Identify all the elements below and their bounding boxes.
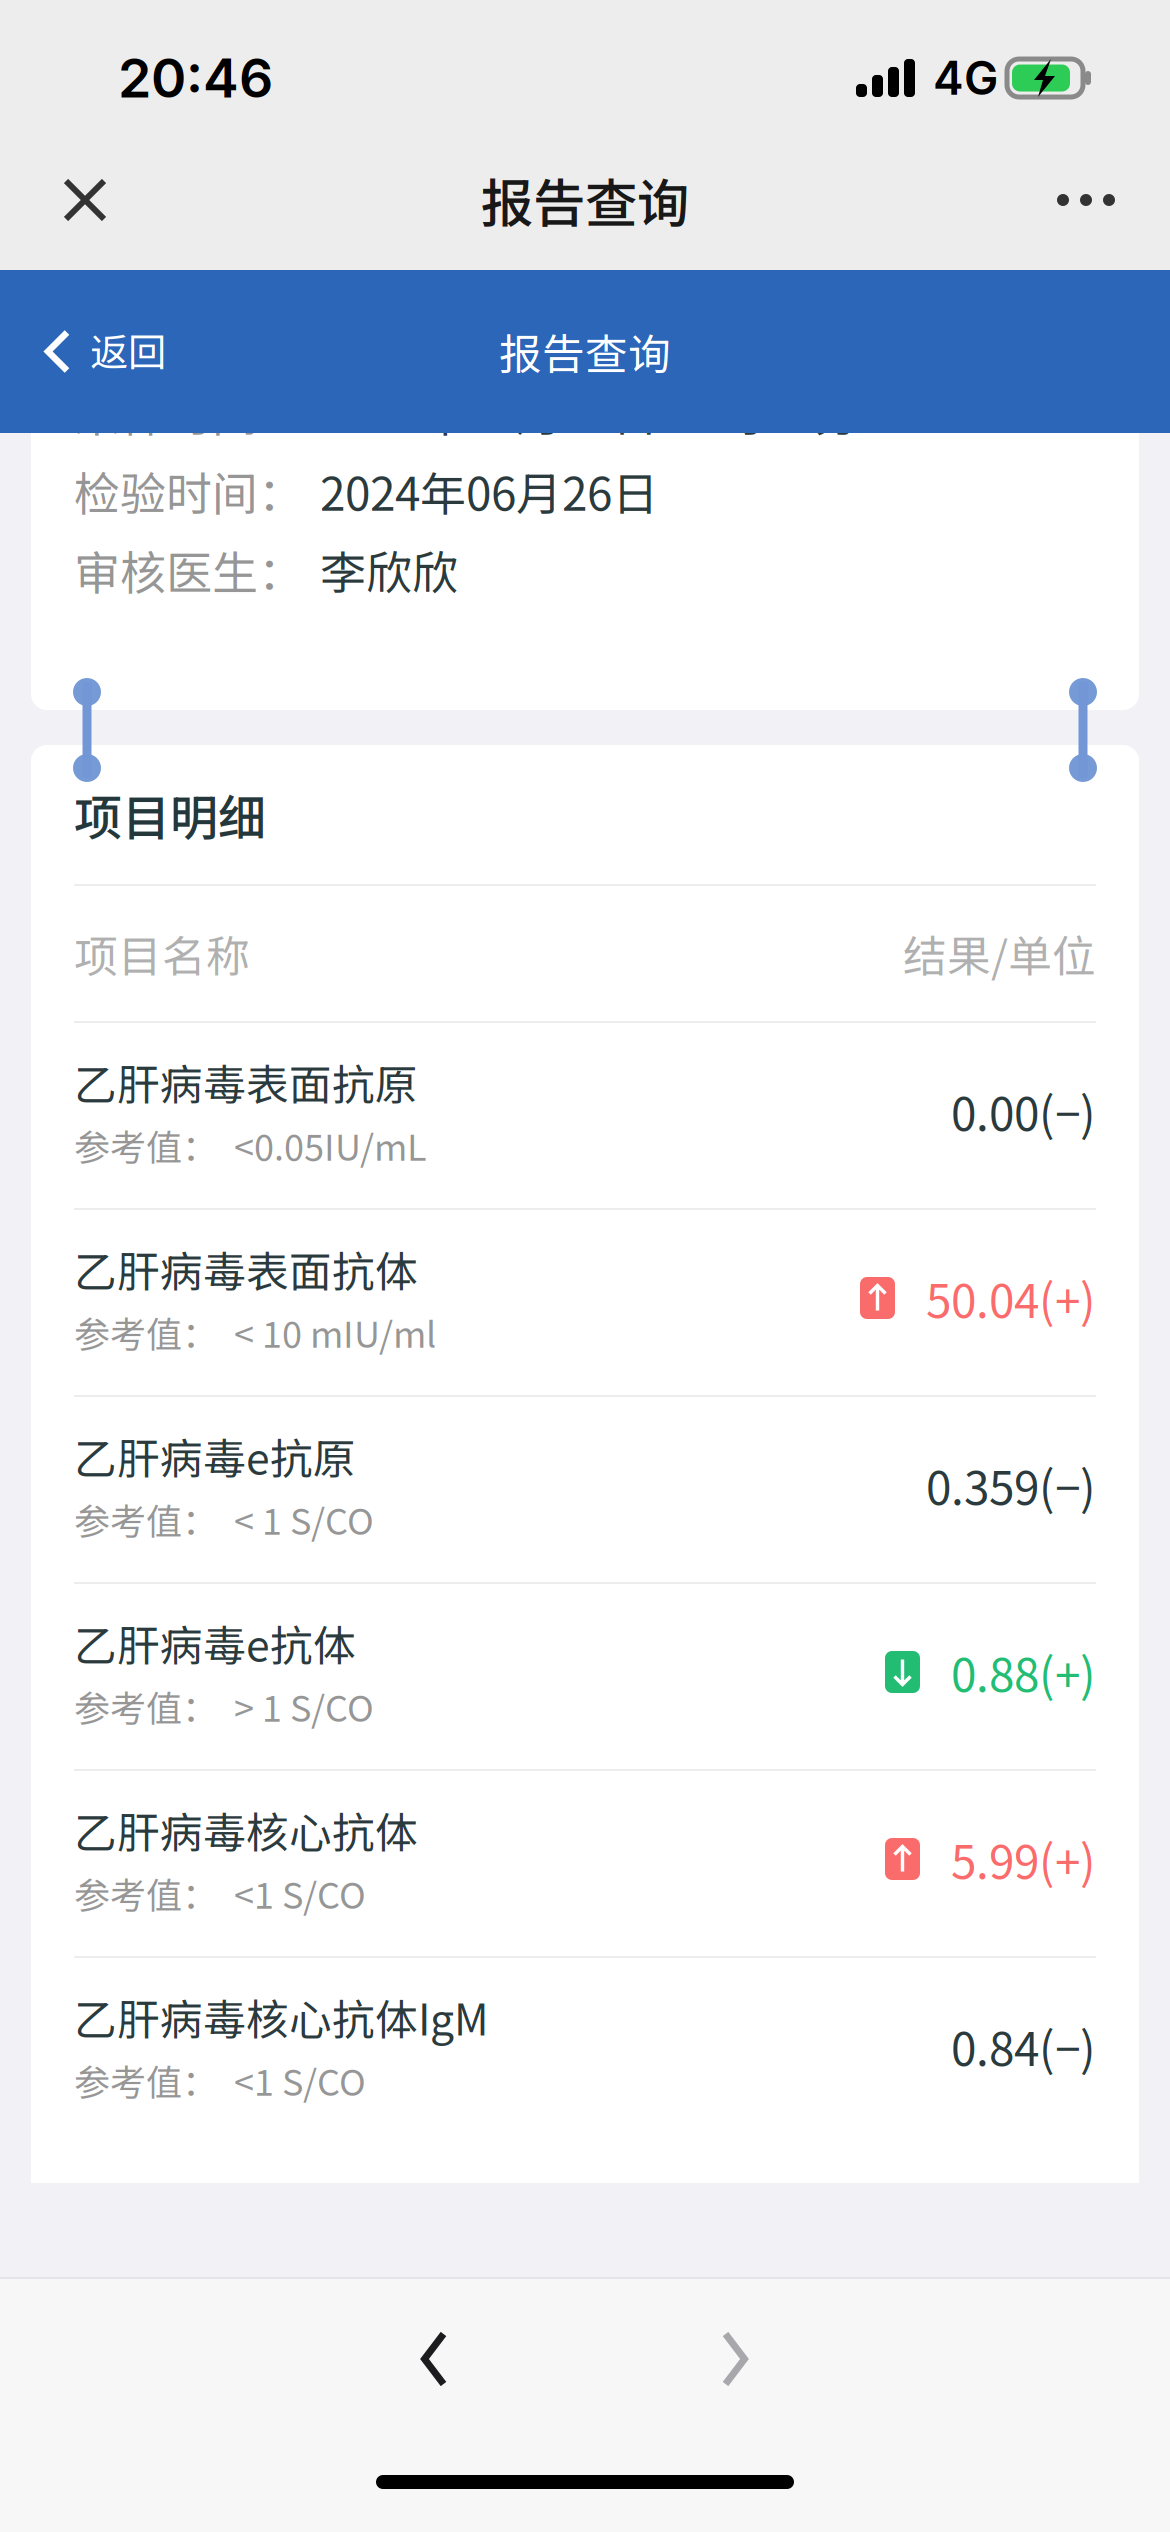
- staticText: 4G: [933, 50, 998, 106]
- staticText: < 10 mIU/ml: [234, 1306, 436, 1358]
- staticText: 乙肝病毒核心抗体: [74, 1799, 418, 1861]
- staticText: 项目明细: [74, 780, 266, 849]
- button[interactable]: Close: [30, 130, 140, 270]
- staticText: < 1 S/CO: [234, 1493, 374, 1545]
- staticText: 审核医生：: [74, 536, 304, 603]
- button[interactable]: More: [1031, 130, 1141, 270]
- staticText: <0.05IU/mL: [234, 1119, 427, 1171]
- staticText: 乙肝病毒表面抗原: [74, 1051, 418, 1113]
- staticText: 参考值：: [74, 1119, 218, 1171]
- staticText: 参考值：: [74, 1493, 218, 1545]
- staticText: 20:46: [118, 46, 273, 110]
- staticText: 报告查询: [481, 162, 689, 238]
- staticText: 参考值：: [74, 1680, 218, 1732]
- staticText: 报告查询: [499, 321, 671, 382]
- staticText: 0.88(+): [951, 1639, 1096, 1705]
- staticText: <1 S/CO: [234, 1867, 366, 1919]
- staticText: 0.359(−): [926, 1452, 1096, 1518]
- staticText: 0.84(−): [951, 2013, 1096, 2079]
- staticText: 参考值：: [74, 1306, 218, 1358]
- staticText: 2024年06月26日: [320, 457, 658, 524]
- staticText: 参考值：: [74, 2054, 218, 2106]
- staticText: 李欣欣: [320, 536, 458, 603]
- staticText: 乙肝病毒e抗原: [74, 1425, 356, 1487]
- staticText: 乙肝病毒核心抗体IgM: [74, 1986, 489, 2048]
- staticText: 采样时间：: [74, 378, 304, 445]
- staticText: 乙肝病毒e抗体: [74, 1612, 356, 1674]
- button[interactable]: Back: [369, 2294, 499, 2424]
- staticText: 返回: [90, 322, 166, 377]
- staticText: 参考值：: [74, 1867, 218, 1919]
- button[interactable]: Forward: [670, 2294, 800, 2424]
- staticText: 5.99(+): [951, 1826, 1096, 1892]
- staticText: 2024年06月26日 03时18分: [320, 378, 860, 445]
- staticText: 检验时间：: [74, 457, 304, 524]
- staticText: 结果/单位: [903, 922, 1096, 985]
- staticText: > 1 S/CO: [234, 1680, 374, 1732]
- staticText: <1 S/CO: [234, 2054, 366, 2106]
- button[interactable]: 返回: [0, 270, 192, 433]
- staticText: 乙肝病毒表面抗体: [74, 1238, 418, 1300]
- staticText: 项目名称: [74, 922, 250, 985]
- staticText: 50.04(+): [926, 1265, 1096, 1331]
- staticText: 0.00(−): [951, 1078, 1096, 1144]
